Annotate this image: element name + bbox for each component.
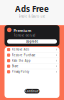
staticText: Upgrade bbox=[25, 40, 38, 43]
staticText: Remove every ad bbox=[13, 34, 35, 37]
staticText: Rate the App bbox=[12, 59, 31, 62]
button[interactable]: Remove Ads bbox=[4, 47, 59, 52]
staticText: Restore Purchase bbox=[12, 53, 36, 57]
staticText: Continue bbox=[25, 89, 39, 93]
staticText: Ads Free bbox=[15, 3, 49, 14]
button[interactable]: Privacy Policy bbox=[4, 69, 59, 74]
button[interactable]: Rate the App bbox=[4, 58, 59, 63]
button[interactable]: Upgrade bbox=[7, 39, 57, 44]
staticText: Premium bbox=[13, 28, 31, 33]
button[interactable]: Restore Purchase bbox=[4, 52, 59, 58]
staticText: Remove Ads bbox=[12, 48, 29, 51]
staticText: Simple & Easy to use bbox=[18, 15, 45, 18]
staticText: Privacy Policy bbox=[12, 70, 29, 73]
button[interactable]: Share bbox=[4, 64, 59, 69]
button[interactable]: Continue bbox=[24, 89, 39, 93]
staticText: Share bbox=[12, 64, 19, 68]
